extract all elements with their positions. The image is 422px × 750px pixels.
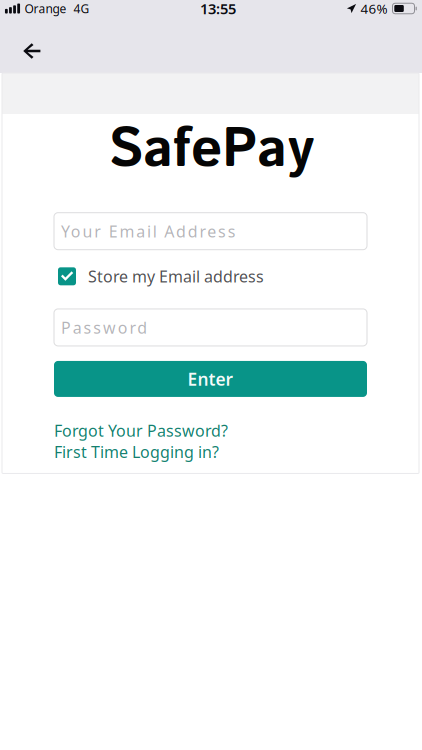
staticText: Forgot Your Password? bbox=[54, 420, 228, 441]
staticText: SafePay bbox=[108, 111, 313, 190]
staticText: First Time Logging in? bbox=[54, 441, 219, 462]
staticText: 46% bbox=[360, 0, 387, 17]
staticText: Orange bbox=[24, 0, 66, 16]
staticText: 13:55 bbox=[200, 0, 236, 18]
button[interactable]: Enter bbox=[54, 361, 367, 397]
button[interactable]: Forgot Your Password? bbox=[54, 420, 228, 441]
staticText: Store my Email address bbox=[88, 266, 264, 287]
button[interactable]: Store my Email address bbox=[54, 266, 264, 287]
button[interactable]: Back bbox=[0, 28, 58, 73]
staticText: Password bbox=[61, 317, 147, 338]
button[interactable]: First Time Logging in? bbox=[54, 441, 219, 462]
staticText: Your Email Address bbox=[61, 221, 236, 242]
staticText: Enter bbox=[187, 367, 233, 390]
staticText: 4G bbox=[73, 0, 89, 16]
